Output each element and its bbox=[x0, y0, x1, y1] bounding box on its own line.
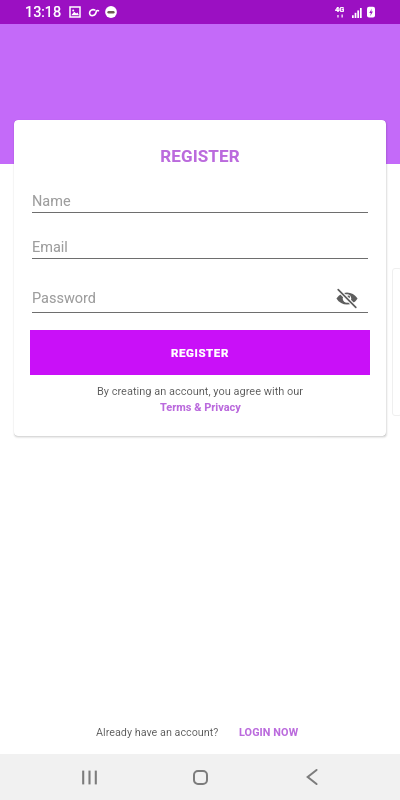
staticText: Already have an account? bbox=[96, 726, 219, 739]
button[interactable]: Toggle password visibility bbox=[336, 286, 368, 310]
button[interactable]: LOGIN NOW bbox=[239, 726, 299, 739]
button[interactable]: REGISTER bbox=[30, 330, 370, 375]
staticText: Password bbox=[32, 290, 336, 307]
staticText: Name bbox=[32, 193, 368, 210]
staticText: By creating an account, you agree with o… bbox=[14, 385, 386, 398]
staticText: REGISTER bbox=[14, 146, 386, 166]
button[interactable]: Recents bbox=[66, 754, 112, 800]
staticText: Email bbox=[32, 239, 368, 256]
button[interactable]: Back bbox=[289, 754, 335, 800]
button[interactable]: Home bbox=[177, 754, 223, 800]
staticText: 13:18 bbox=[25, 4, 62, 21]
staticText: LOGIN NOW bbox=[239, 726, 299, 739]
button[interactable]: Terms & Privacy bbox=[160, 401, 241, 414]
staticText: REGISTER bbox=[171, 346, 229, 359]
staticText: 4G bbox=[335, 5, 345, 14]
